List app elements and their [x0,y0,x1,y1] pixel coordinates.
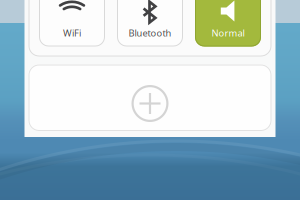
button[interactable]: WiFi [39,0,105,46]
staticText: Bluetooth [128,27,171,39]
button[interactable]: Add toggle [125,78,175,128]
button[interactable]: Bluetooth [117,0,183,46]
staticText: WiFi [63,27,81,39]
staticText: Normal [211,27,244,39]
button[interactable]: Normal [195,0,261,46]
